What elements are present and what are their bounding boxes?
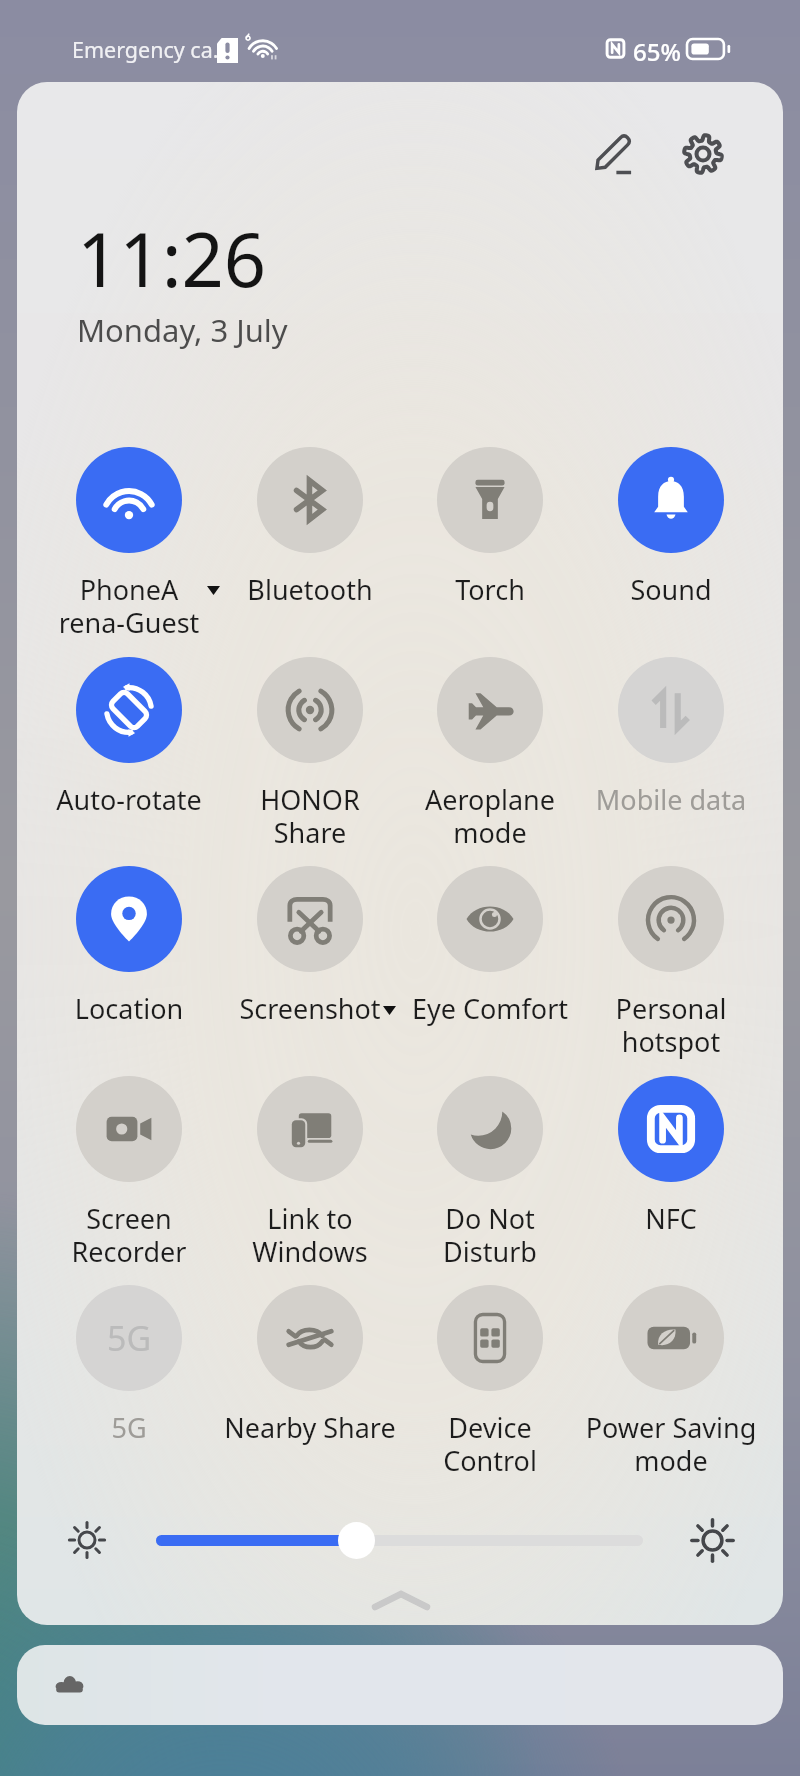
staticText: Screen Recorder — [39, 1200, 219, 1270]
button[interactable]: Screen Recorder — [39, 1076, 219, 1270]
button[interactable]: Decrease brightness — [67, 1520, 107, 1560]
button[interactable]: Settings — [657, 108, 749, 200]
button[interactable]: Mobile data — [581, 657, 761, 818]
button[interactable] — [156, 1535, 643, 1546]
staticText: Sound — [581, 571, 761, 608]
button[interactable]: Screenshot — [220, 866, 400, 1027]
button[interactable] — [17, 1645, 783, 1725]
button[interactable]: Increase brightness — [689, 1517, 736, 1564]
staticText: Eye Comfort — [400, 990, 580, 1027]
button[interactable]: NFC — [581, 1076, 761, 1237]
staticText: Screenshot — [220, 990, 400, 1027]
button[interactable]: Edit — [569, 108, 661, 200]
button[interactable]: Do Not Disturb — [400, 1076, 580, 1270]
staticText: Power Saving mode — [581, 1409, 761, 1479]
staticText: HONOR Share — [220, 781, 400, 851]
button[interactable]: Aeroplane mode — [400, 657, 580, 851]
staticText: Auto-rotate — [39, 781, 219, 818]
button[interactable]: Link to Windows — [220, 1076, 400, 1270]
staticText: Device Control — [400, 1409, 580, 1479]
button[interactable]: PhoneA rena-Guest — [39, 447, 219, 641]
staticText: 5G — [107, 1315, 152, 1361]
staticText: Aeroplane mode — [400, 781, 580, 851]
staticText: Mobile data — [581, 781, 761, 818]
staticText: Do Not Disturb — [400, 1200, 580, 1270]
staticText: Emergency ca… — [72, 35, 230, 64]
staticText: Personal hotspot — [581, 990, 761, 1060]
button[interactable]: Sound — [581, 447, 761, 608]
button[interactable]: Auto-rotate — [39, 657, 219, 818]
button[interactable]: Torch — [400, 447, 580, 608]
staticText: 65% — [633, 35, 681, 68]
staticText: Monday, 3 July — [77, 309, 288, 351]
button[interactable]: Eye Comfort — [400, 866, 580, 1027]
staticText: Nearby Share — [220, 1409, 400, 1446]
staticText: PhoneA rena-Guest — [39, 571, 219, 641]
button[interactable]: Power Saving mode — [581, 1285, 761, 1479]
staticText: Link to Windows — [220, 1200, 400, 1270]
button[interactable]: Location — [39, 866, 219, 1027]
staticText: 5G — [39, 1409, 219, 1446]
staticText: Location — [39, 990, 219, 1027]
staticText: NFC — [581, 1200, 761, 1237]
button[interactable]: Bluetooth — [220, 447, 400, 608]
button[interactable]: Device Control — [400, 1285, 580, 1479]
staticText: Bluetooth — [220, 571, 400, 608]
button[interactable]: Personal hotspot — [581, 866, 761, 1060]
button[interactable]: HONOR Share — [220, 657, 400, 851]
button[interactable]: Nearby Share — [220, 1285, 400, 1446]
button[interactable]: 5G — [39, 1285, 219, 1446]
staticText: Torch — [400, 571, 580, 608]
staticText: 11:26 — [77, 208, 267, 309]
